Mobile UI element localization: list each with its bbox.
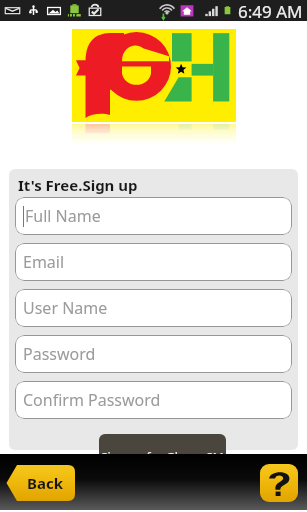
staticText: Email — [23, 251, 65, 273]
button[interactable]: Sign up for Ghana SM — [99, 434, 226, 472]
button[interactable]: Email — [15, 243, 292, 281]
button[interactable]: Back — [6, 465, 75, 501]
staticText: Confirm Password — [23, 389, 161, 411]
staticText: User Name — [23, 297, 108, 319]
button[interactable]: Help — [260, 464, 298, 502]
button[interactable]: Full Name — [15, 197, 292, 235]
staticText: Back — [27, 473, 64, 493]
button[interactable]: User Name — [15, 289, 292, 327]
button[interactable]: Confirm Password — [15, 381, 292, 419]
button[interactable]: Password — [15, 335, 292, 373]
staticText: Password — [23, 343, 96, 365]
staticText: It's Free.Sign up — [18, 175, 138, 195]
staticText: 6:49 AM — [238, 0, 303, 21]
staticText: Sign up for Ghana SM — [101, 449, 224, 465]
staticText: Full Name — [25, 205, 101, 227]
